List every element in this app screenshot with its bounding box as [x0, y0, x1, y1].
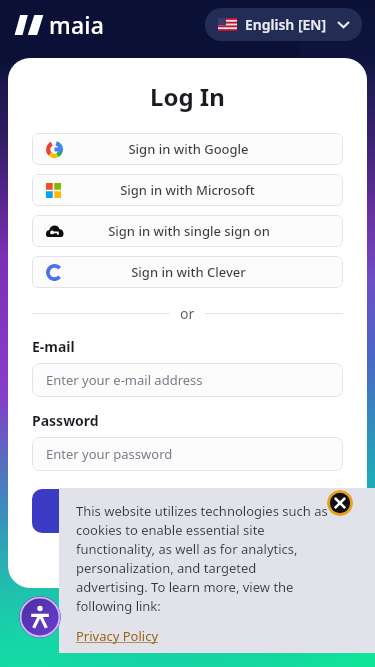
staticText: Log In	[78, 500, 127, 522]
button[interactable]: Close cookie notice	[327, 490, 353, 516]
staticText: English [EN]	[245, 15, 327, 34]
staticText: Enter your e-mail address	[46, 371, 203, 389]
button[interactable]: Enter your e-mail address	[32, 363, 343, 397]
button[interactable]: Enter your password	[32, 437, 343, 471]
staticText: Enter your password	[46, 445, 173, 463]
button[interactable]: Sign in with Clever	[32, 256, 343, 288]
staticText: This website utilizes technologies such …	[76, 502, 329, 615]
staticText: Sign in with single sign on	[108, 222, 270, 240]
staticText: Sign in with Google	[128, 140, 249, 158]
staticText: or	[180, 304, 195, 323]
staticText: Sign in with Microsoft	[120, 181, 255, 199]
button[interactable]: Sign in with single sign on	[32, 215, 343, 247]
button[interactable]: Accessibility options	[19, 596, 61, 638]
staticText: maia	[49, 9, 105, 40]
button[interactable]: English [EN]	[205, 8, 362, 41]
staticText: E-mail	[32, 337, 75, 356]
staticText: Password	[32, 411, 99, 430]
staticText: Sign in with Clever	[131, 263, 246, 281]
button[interactable]: Sign in with Microsoft	[32, 174, 343, 206]
staticText: Log In	[150, 80, 225, 113]
button[interactable]: Log In	[32, 489, 172, 533]
button[interactable]: Privacy Policy	[76, 627, 159, 645]
button[interactable]: Sign in with Google	[32, 133, 343, 165]
button[interactable]: maia home	[14, 9, 105, 40]
